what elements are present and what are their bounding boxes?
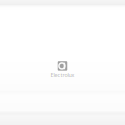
button[interactable]: Electrolux	[50, 61, 74, 78]
staticText: Electrolux	[50, 71, 74, 78]
